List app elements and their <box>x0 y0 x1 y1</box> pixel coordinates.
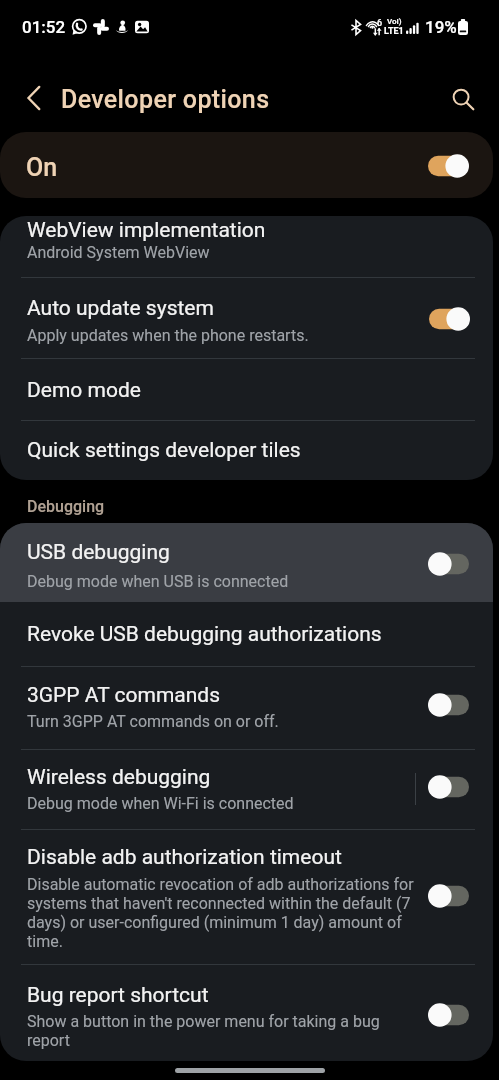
button[interactable]: Switch off <box>429 1003 469 1027</box>
button[interactable]: Revoke USB debugging authorizations <box>0 602 493 666</box>
staticText: Debug mode when USB is connected <box>27 572 289 591</box>
staticText: Developer options <box>61 85 270 114</box>
staticText: Wireless debugging <box>27 765 211 790</box>
staticText: Demo mode <box>27 378 141 403</box>
staticText: VoI) <box>387 17 402 26</box>
staticText: 3GPP AT commands <box>27 683 221 708</box>
staticText: 19% <box>425 17 457 37</box>
button[interactable]: Disable adb authorization timeout <box>0 830 493 964</box>
button[interactable]: Switch off <box>429 693 469 717</box>
staticText: 01:52 <box>22 17 66 37</box>
button[interactable]: Wireless debugging <box>0 750 493 829</box>
button[interactable]: Switch on <box>429 307 469 331</box>
staticText: Auto update system <box>27 296 214 321</box>
button[interactable]: Navigate up <box>12 72 56 116</box>
staticText: Disable automatic revocation of adb auth… <box>27 875 415 951</box>
staticText: Show a button in the power menu for taki… <box>27 1012 415 1050</box>
staticText: LTE1 <box>384 26 404 37</box>
staticText: Android System WebView <box>27 243 210 262</box>
button[interactable]: Demo mode <box>0 359 493 420</box>
staticText: Turn 3GPP AT commands on or off. <box>27 712 279 731</box>
staticText: Debugging <box>27 497 105 516</box>
staticText: On <box>26 153 58 182</box>
staticText: USB debugging <box>27 540 170 565</box>
button[interactable]: Bug report shortcut <box>0 965 493 1061</box>
button[interactable]: Switch off <box>429 884 469 908</box>
staticText: Bug report shortcut <box>27 983 209 1008</box>
button[interactable]: USB debugging <box>0 523 493 602</box>
button[interactable]: 3GPP AT commands <box>0 667 493 749</box>
button[interactable]: Quick settings developer tiles <box>0 421 493 480</box>
staticText: WebView implementation <box>27 218 266 243</box>
button[interactable]: WebView implementation <box>0 216 493 277</box>
button[interactable]: Switch off <box>429 552 469 576</box>
button[interactable]: On <box>0 132 493 198</box>
button[interactable]: Switch off <box>429 775 469 799</box>
button[interactable]: Switch on <box>428 154 468 178</box>
staticText: 6 <box>377 18 383 29</box>
button[interactable]: Search <box>441 72 485 116</box>
staticText: Revoke USB debugging authorizations <box>27 622 382 647</box>
staticText: Disable adb authorization timeout <box>27 845 342 870</box>
staticText: Apply updates when the phone restarts. <box>27 326 309 345</box>
button[interactable]: Auto update system <box>0 278 493 358</box>
staticText: Quick settings developer tiles <box>27 438 301 463</box>
staticText: Debug mode when Wi-Fi is connected <box>27 794 294 813</box>
